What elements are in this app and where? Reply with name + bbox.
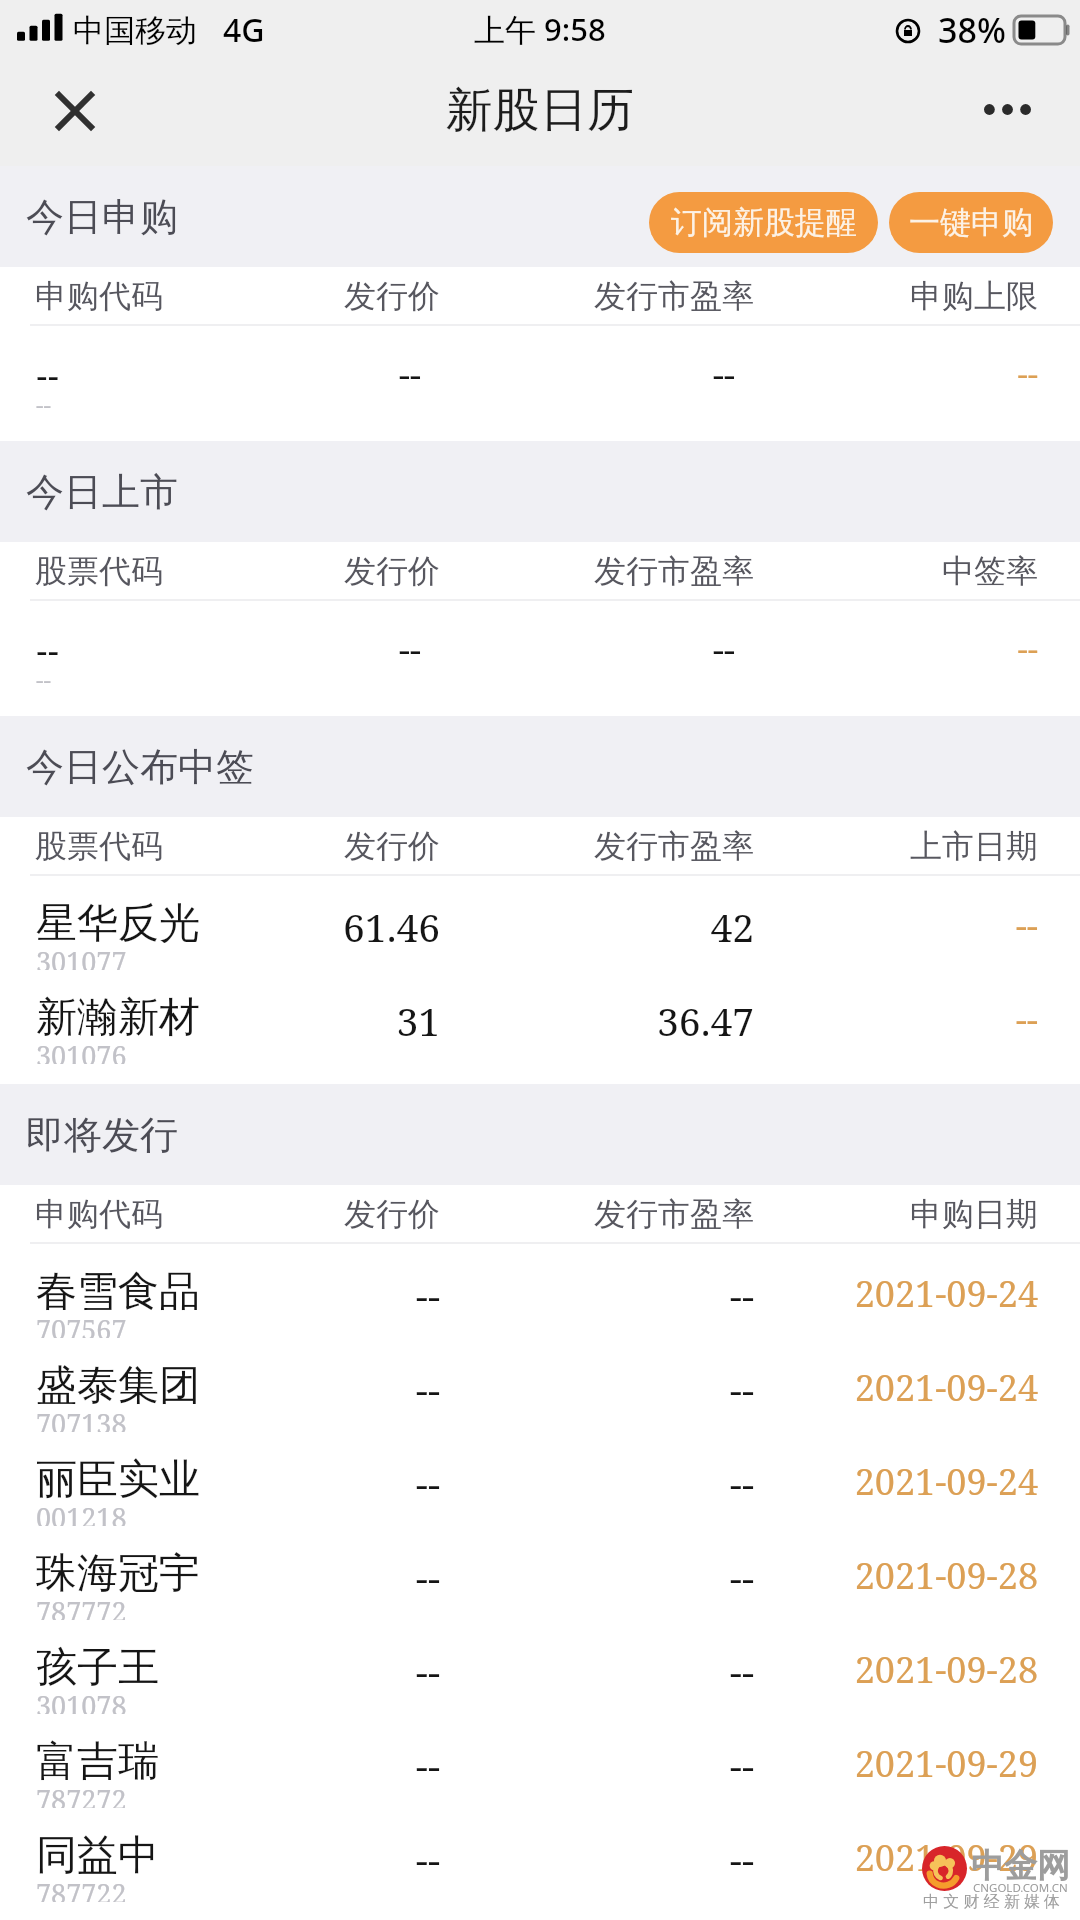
staticText: 即将发行 — [26, 1111, 178, 1159]
staticText: -- — [0, 626, 1038, 671]
staticText: 星华反光 — [36, 898, 200, 950]
button[interactable]: 订阅新股提醒 — [649, 192, 878, 253]
staticText: 发行市盈率 — [0, 826, 754, 866]
staticText: -- — [36, 350, 60, 399]
staticText: 股票代码 — [35, 551, 163, 591]
staticText: -- — [36, 663, 51, 696]
button[interactable]: 丽臣实业 — [0, 1432, 1080, 1526]
staticText: 一键申购 — [909, 203, 1033, 242]
staticText: -- — [0, 1268, 440, 1321]
staticText: 787772 — [36, 1593, 127, 1620]
staticText: 中国移动 — [73, 11, 197, 50]
button[interactable]: 珠海冠宇 — [0, 1526, 1080, 1620]
staticText: -- — [0, 1738, 754, 1791]
staticText: 2021-09-29 — [0, 1739, 1038, 1788]
staticText: 787722 — [36, 1875, 127, 1902]
staticText: 4G — [223, 8, 265, 52]
staticText: 申购上限 — [0, 276, 1038, 316]
staticText: 42 — [0, 900, 754, 953]
staticText: 2021-09-29 — [0, 1833, 1038, 1882]
staticText: 36.47 — [0, 994, 754, 1047]
staticText: 订阅新股提醒 — [671, 203, 857, 242]
staticText: 61.46 — [0, 900, 440, 953]
staticText: -- — [0, 1456, 440, 1509]
button[interactable]: 孩子王 — [0, 1620, 1080, 1714]
staticText: -- — [0, 1644, 440, 1697]
staticText: 上午 9:58 — [474, 8, 606, 50]
button[interactable]: -- — [0, 326, 1080, 441]
staticText: 发行价 — [0, 551, 440, 591]
staticText: -- — [0, 1550, 440, 1603]
staticText: -- — [0, 625, 735, 674]
staticText: -- — [0, 1362, 754, 1415]
staticText: 今日申购 — [26, 193, 178, 241]
staticText: 孩子王 — [36, 1642, 159, 1694]
staticText: 丽臣实业 — [36, 1454, 200, 1506]
staticText: 31 — [0, 994, 440, 1047]
button[interactable]: 春雪食品 — [0, 1244, 1080, 1338]
staticText: 发行价 — [0, 1194, 440, 1234]
staticText: 301078 — [36, 1687, 127, 1714]
staticText: 申购日期 — [0, 1194, 1038, 1234]
staticText: 2021-09-28 — [0, 1551, 1038, 1600]
staticText: 新股日历 — [446, 81, 634, 140]
staticText: 707138 — [36, 1405, 127, 1432]
staticText: -- — [0, 625, 421, 674]
staticText: -- — [0, 350, 735, 399]
staticText: -- — [0, 1832, 754, 1885]
staticText: 707567 — [36, 1311, 127, 1338]
button[interactable]: 更多 — [965, 71, 1049, 155]
staticText: -- — [0, 1644, 754, 1697]
staticText: 发行市盈率 — [0, 1194, 754, 1234]
button[interactable]: 星华反光 — [0, 876, 1080, 970]
button[interactable]: 盛泰集团 — [0, 1338, 1080, 1432]
staticText: -- — [0, 350, 421, 399]
staticText: 股票代码 — [35, 826, 163, 866]
staticText: -- — [0, 1362, 440, 1415]
staticText: -- — [0, 351, 1038, 396]
staticText: -- — [0, 1268, 754, 1321]
staticText: 38% — [938, 7, 1006, 53]
staticText: 发行市盈率 — [0, 276, 754, 316]
staticText: 2021-09-28 — [0, 1645, 1038, 1694]
staticText: 申购代码 — [35, 1194, 163, 1234]
button[interactable]: 新瀚新材 — [0, 970, 1080, 1064]
button[interactable]: 富吉瑞 — [0, 1714, 1080, 1808]
staticText: -- — [0, 1832, 440, 1885]
staticText: 发行价 — [0, 826, 440, 866]
staticText: -- — [0, 995, 1038, 1044]
staticText: CNGOLD.COM.CN — [973, 1880, 1068, 1896]
staticText: 2021-09-24 — [0, 1457, 1038, 1506]
staticText: 新瀚新材 — [36, 992, 200, 1044]
staticText: 春雪食品 — [36, 1266, 200, 1318]
staticText: 发行价 — [0, 276, 440, 316]
staticText: 中金网 — [971, 1845, 1070, 1887]
staticText: 301076 — [36, 1037, 127, 1064]
staticText: 珠海冠宇 — [36, 1548, 200, 1600]
staticText: 中 文 财 经 新 媒 体 — [923, 1890, 1060, 1912]
staticText: 发行市盈率 — [0, 551, 754, 591]
staticText: 今日公布中签 — [26, 743, 254, 791]
staticText: 富吉瑞 — [36, 1736, 159, 1788]
button[interactable]: 一键申购 — [889, 192, 1053, 253]
staticText: 301077 — [36, 943, 127, 970]
staticText: 001218 — [36, 1499, 127, 1526]
staticText: 2021-09-24 — [0, 1269, 1038, 1318]
staticText: 申购代码 — [35, 276, 163, 316]
staticText: 盛泰集团 — [36, 1360, 200, 1412]
staticText: -- — [36, 388, 51, 421]
staticText: 中签率 — [0, 551, 1038, 591]
staticText: 2021-09-24 — [0, 1363, 1038, 1412]
staticText: -- — [0, 1456, 754, 1509]
staticText: 787272 — [36, 1781, 127, 1808]
staticText: 上市日期 — [0, 826, 1038, 866]
button[interactable]: 关闭 — [32, 71, 116, 155]
staticText: -- — [36, 625, 60, 674]
staticText: -- — [0, 1738, 440, 1791]
staticText: -- — [0, 901, 1038, 950]
staticText: 今日上市 — [26, 468, 178, 516]
button[interactable]: 同益中 — [0, 1808, 1080, 1902]
staticText: 同益中 — [36, 1830, 159, 1882]
staticText: -- — [0, 1550, 754, 1603]
button[interactable]: -- — [0, 601, 1080, 716]
